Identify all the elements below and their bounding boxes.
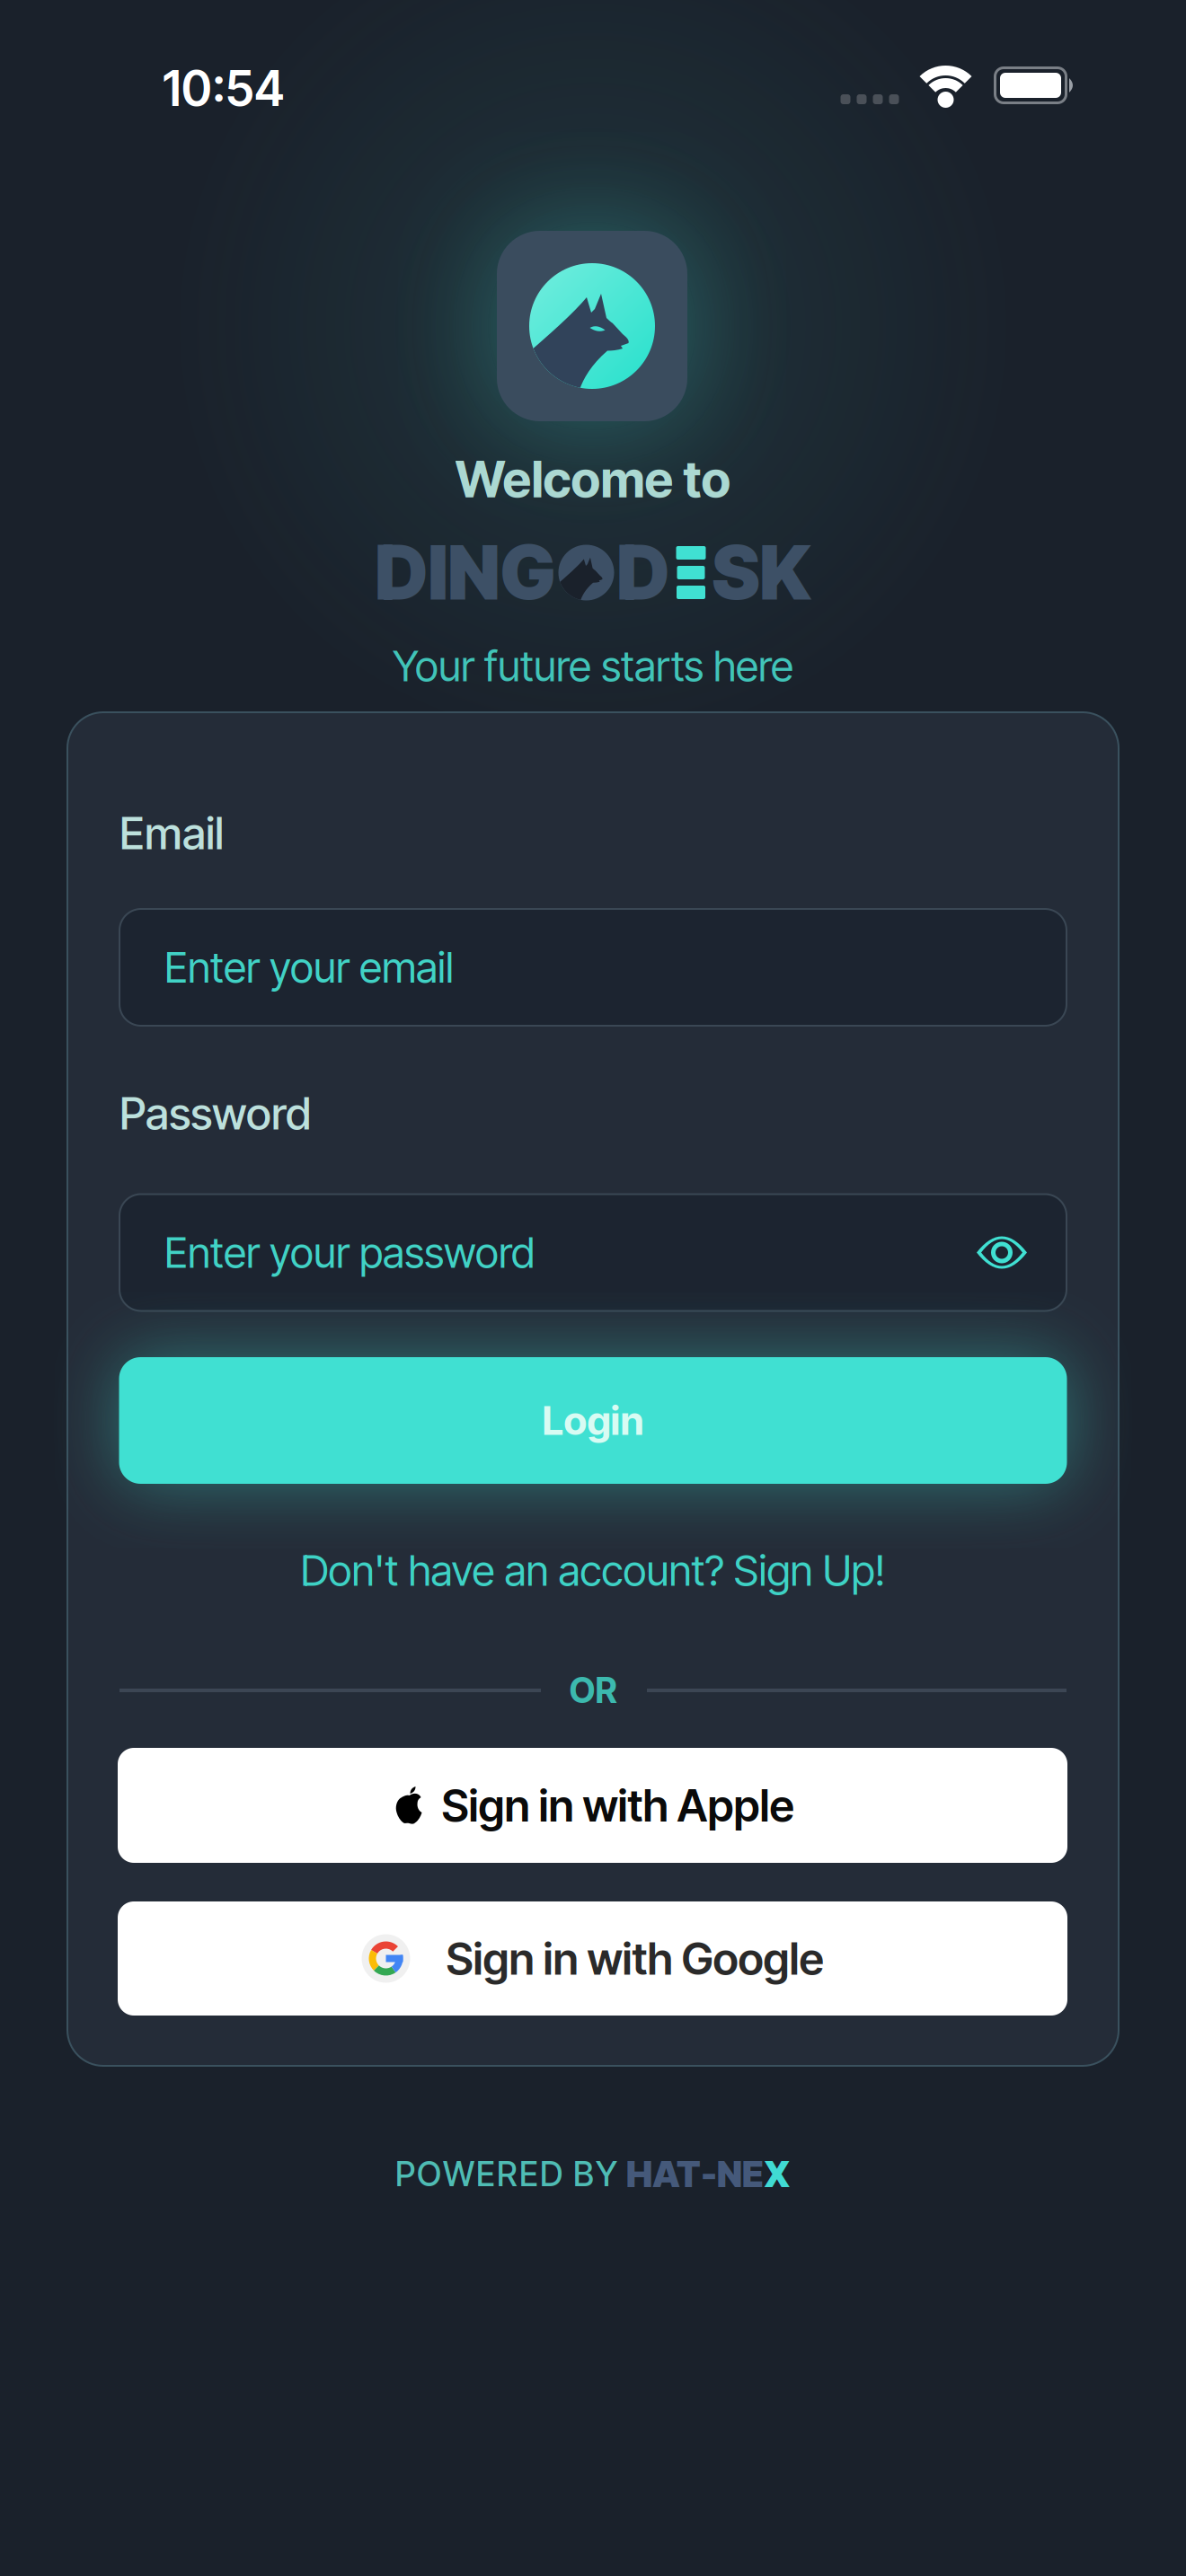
button[interactable]: Sign in with Google [118,1901,1067,2016]
staticText: Enter your password [164,1228,535,1277]
staticText: Email [119,807,224,859]
staticText: Your future starts here [393,641,793,691]
button[interactable]: Login [119,1357,1067,1484]
staticText: Enter your email [164,943,454,992]
staticText: Sign in with Google [446,1932,823,1985]
button[interactable]: Sign in with Apple [118,1748,1067,1863]
staticText: Don't have an account? Sign Up! [301,1546,885,1595]
staticText: SK [712,529,811,616]
staticText: Welcome to [455,450,731,509]
button[interactable]: Don't have an account? Sign Up! [301,1546,885,1595]
staticText: POWERED BY [395,2154,626,2194]
staticText: HAT-NE [626,2153,764,2195]
staticText: DING [375,529,556,616]
button[interactable]: Show password [977,1234,1027,1271]
staticText: OR [569,1670,617,1711]
staticText: D [617,529,670,616]
staticText: 10:54 [163,60,285,117]
staticText: X [764,2153,791,2195]
staticText: Login [542,1397,644,1444]
staticText: Password [119,1087,311,1139]
staticText: Sign in with Apple [442,1779,794,1831]
